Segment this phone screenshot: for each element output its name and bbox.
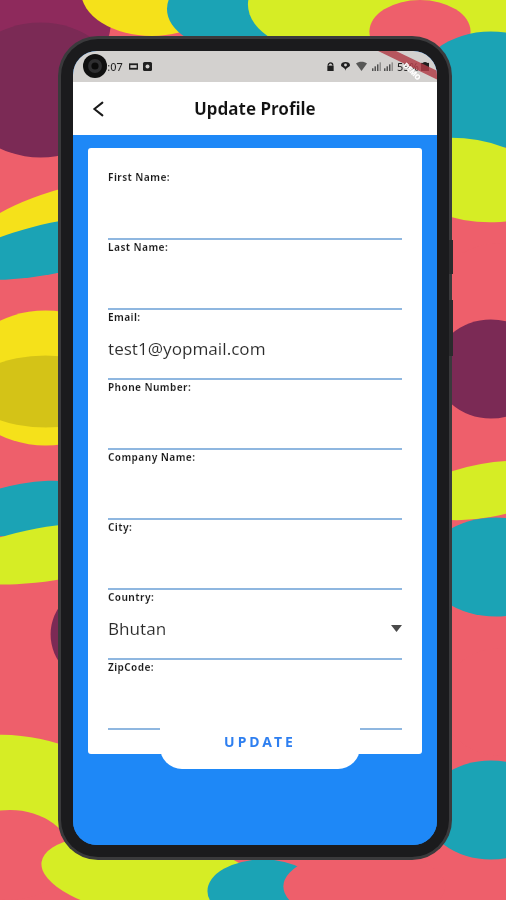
button[interactable]: First Name: <box>108 170 402 240</box>
staticText: Bhutan <box>108 617 167 640</box>
button[interactable]: ZipCode: <box>108 660 402 730</box>
staticText: ZipCode: <box>108 660 155 674</box>
staticText: test1@yopmail.com <box>108 337 266 360</box>
button[interactable]: Email: <box>108 310 402 380</box>
staticText: UPDATE <box>224 732 296 751</box>
staticText: Phone Number: <box>108 380 192 394</box>
staticText: Email: <box>108 310 141 324</box>
staticText: Country: <box>108 590 155 604</box>
staticText: 55% <box>397 59 419 74</box>
staticText: DEMO <box>401 61 423 83</box>
staticText: Last Name: <box>108 240 169 254</box>
button[interactable]: Last Name: <box>108 240 402 310</box>
button[interactable]: Company Name: <box>108 450 402 520</box>
staticText: Update Profile <box>194 97 316 120</box>
button[interactable]: Phone Number: <box>108 380 402 450</box>
button[interactable]: City: <box>108 520 402 590</box>
staticText: 3:07 <box>101 59 123 74</box>
button[interactable]: Country: <box>108 590 402 660</box>
staticText: City: <box>108 520 133 534</box>
staticText: Company Name: <box>108 450 196 464</box>
button[interactable]: Back <box>79 88 121 130</box>
button[interactable]: UPDATE <box>160 724 360 769</box>
staticText: First Name: <box>108 170 170 184</box>
